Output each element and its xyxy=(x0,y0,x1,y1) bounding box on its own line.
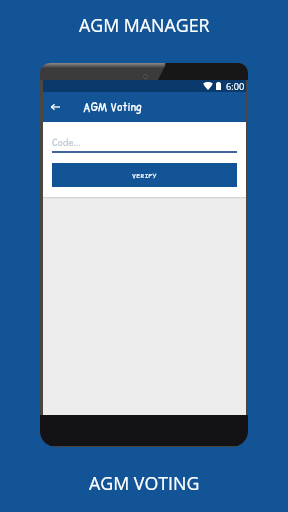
staticText: AGM Voting xyxy=(83,100,142,115)
button[interactable]: VERIFY xyxy=(52,163,237,187)
staticText: AGM MANAGER xyxy=(79,13,210,37)
staticText: VERIFY xyxy=(132,171,157,180)
staticText: Code... xyxy=(52,136,81,149)
button[interactable]: Back xyxy=(48,97,63,117)
staticText: AGM VOTING xyxy=(89,471,200,495)
staticText: 6:00 xyxy=(226,80,245,92)
